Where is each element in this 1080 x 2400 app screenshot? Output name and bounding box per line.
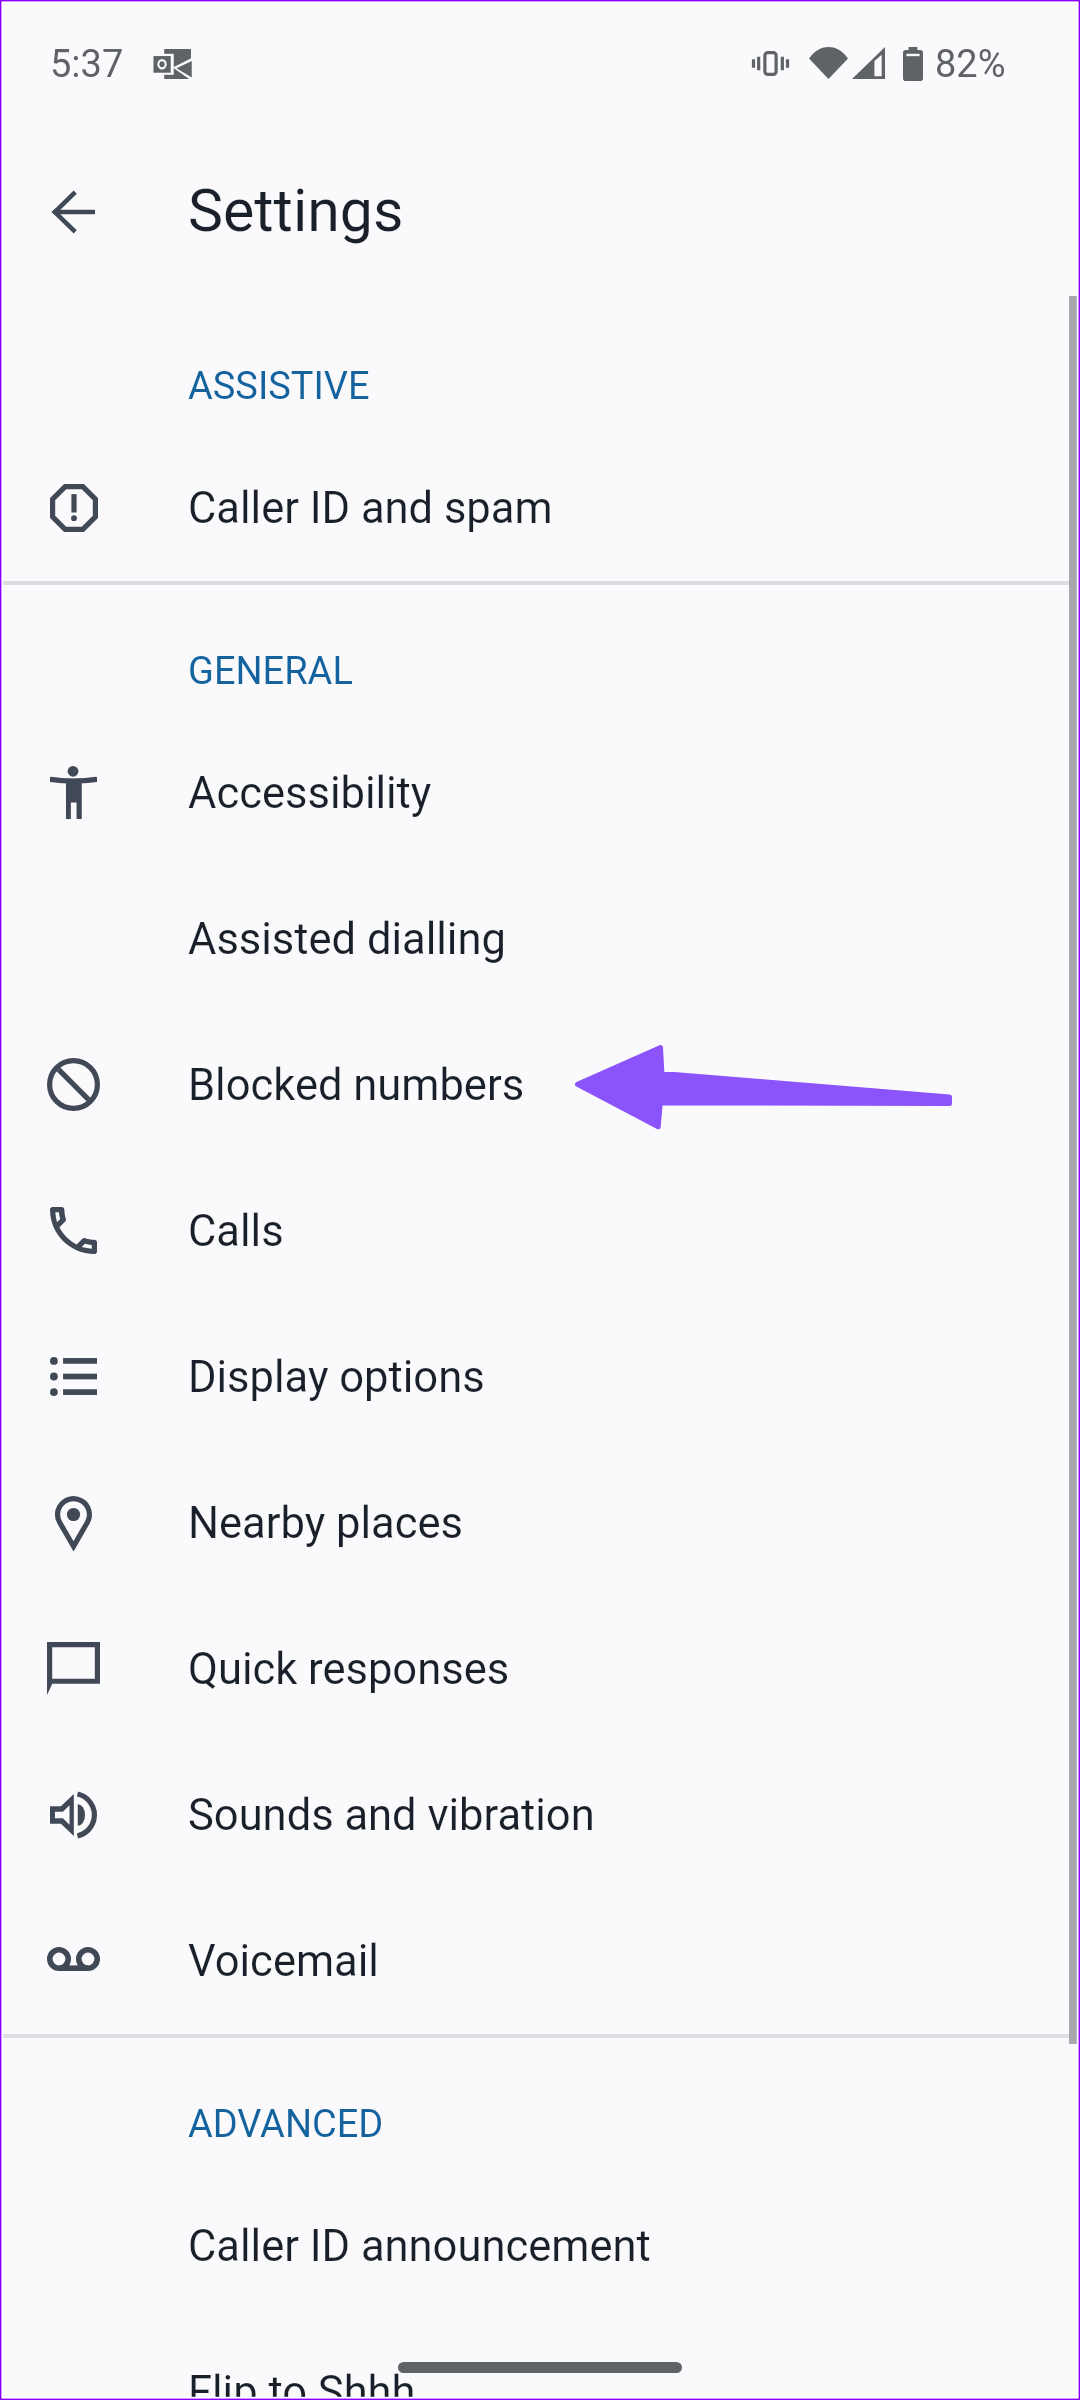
button[interactable]: Sounds and vibration bbox=[0, 1740, 1080, 1886]
button[interactable]: Nearby places bbox=[0, 1448, 1080, 1594]
staticText: Nearby places bbox=[188, 1498, 464, 1549]
staticText: Flip to Shhh bbox=[188, 2367, 416, 2400]
staticText: Quick responses bbox=[188, 1644, 510, 1695]
button[interactable]: Quick responses bbox=[0, 1594, 1080, 1740]
staticText: Assisted dialling bbox=[188, 914, 506, 965]
button[interactable]: Caller ID and spam bbox=[0, 433, 1080, 579]
staticText: ADVANCED bbox=[188, 2102, 384, 2147]
staticText: Calls bbox=[188, 1206, 284, 1257]
staticText: Voicemail bbox=[188, 1936, 379, 1987]
staticText: GENERAL bbox=[188, 649, 353, 694]
staticText: Caller ID and spam bbox=[188, 483, 553, 534]
button[interactable]: Voicemail bbox=[0, 1886, 1080, 2032]
button[interactable]: Caller ID announcement bbox=[0, 2171, 1080, 2317]
button[interactable]: Blocked numbers bbox=[0, 1010, 1080, 1156]
button[interactable]: Assisted dialling bbox=[0, 864, 1080, 1010]
staticText: Settings bbox=[188, 176, 404, 245]
staticText: Display options bbox=[188, 1352, 485, 1403]
staticText: Accessibility bbox=[188, 768, 432, 819]
staticText: ASSISTIVE bbox=[188, 364, 370, 409]
staticText: Blocked numbers bbox=[188, 1060, 525, 1111]
button[interactable]: Flip to Shhh bbox=[0, 2317, 1080, 2400]
button[interactable]: Navigate back bbox=[25, 163, 122, 260]
button[interactable]: Display options bbox=[0, 1302, 1080, 1448]
button[interactable]: Accessibility bbox=[0, 718, 1080, 864]
staticText: 82% bbox=[935, 42, 1006, 87]
staticText: Sounds and vibration bbox=[188, 1790, 595, 1841]
button[interactable]: Calls bbox=[0, 1156, 1080, 1302]
staticText: 5:37 bbox=[50, 42, 124, 87]
staticText: Caller ID announcement bbox=[188, 2221, 651, 2272]
